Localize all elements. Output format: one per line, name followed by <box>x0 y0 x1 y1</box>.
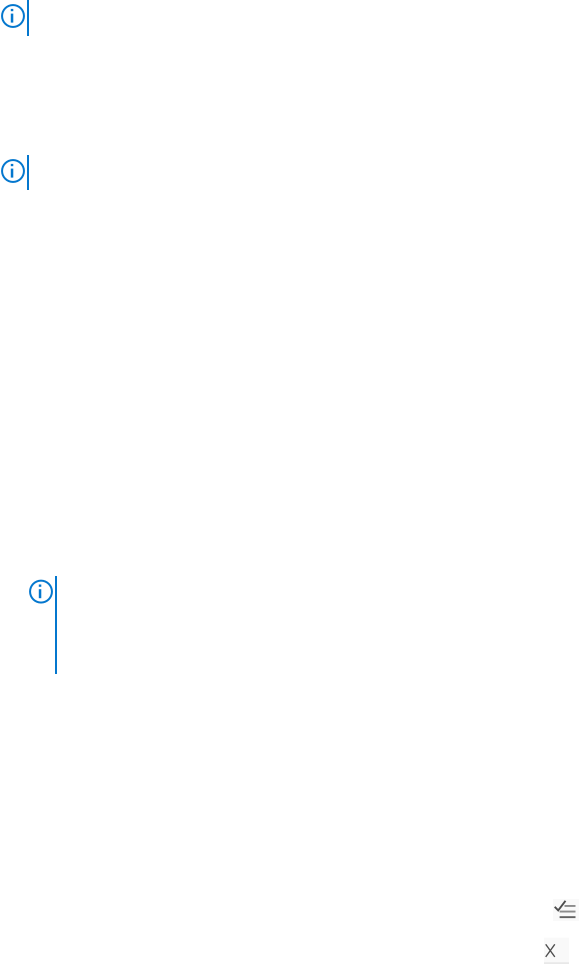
button[interactable]: Missing image <box>544 938 569 964</box>
button[interactable]: Checklist image <box>553 899 579 921</box>
